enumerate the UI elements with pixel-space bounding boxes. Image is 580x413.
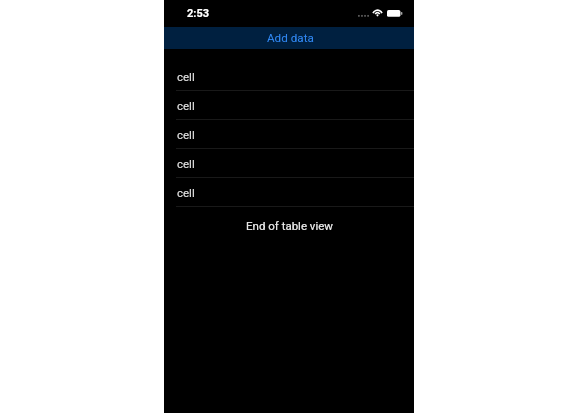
- staticText: cell: [177, 157, 195, 170]
- button[interactable]: cell: [164, 91, 414, 120]
- staticText: Add data: [267, 31, 314, 45]
- other: Wi-Fi: [372, 8, 383, 20]
- button[interactable]: Add data: [164, 27, 414, 49]
- staticText: End of table view: [246, 219, 333, 232]
- button[interactable]: cell: [164, 178, 414, 207]
- other: Cellular signal: [358, 8, 369, 20]
- button[interactable]: cell: [164, 149, 414, 178]
- button[interactable]: cell: [164, 62, 414, 91]
- other: Battery: [387, 8, 402, 20]
- button[interactable]: cell: [164, 120, 414, 149]
- staticText: cell: [177, 128, 195, 141]
- staticText: cell: [177, 70, 195, 83]
- staticText: cell: [177, 186, 195, 199]
- staticText: 2:53: [187, 7, 210, 20]
- staticText: cell: [177, 99, 195, 112]
